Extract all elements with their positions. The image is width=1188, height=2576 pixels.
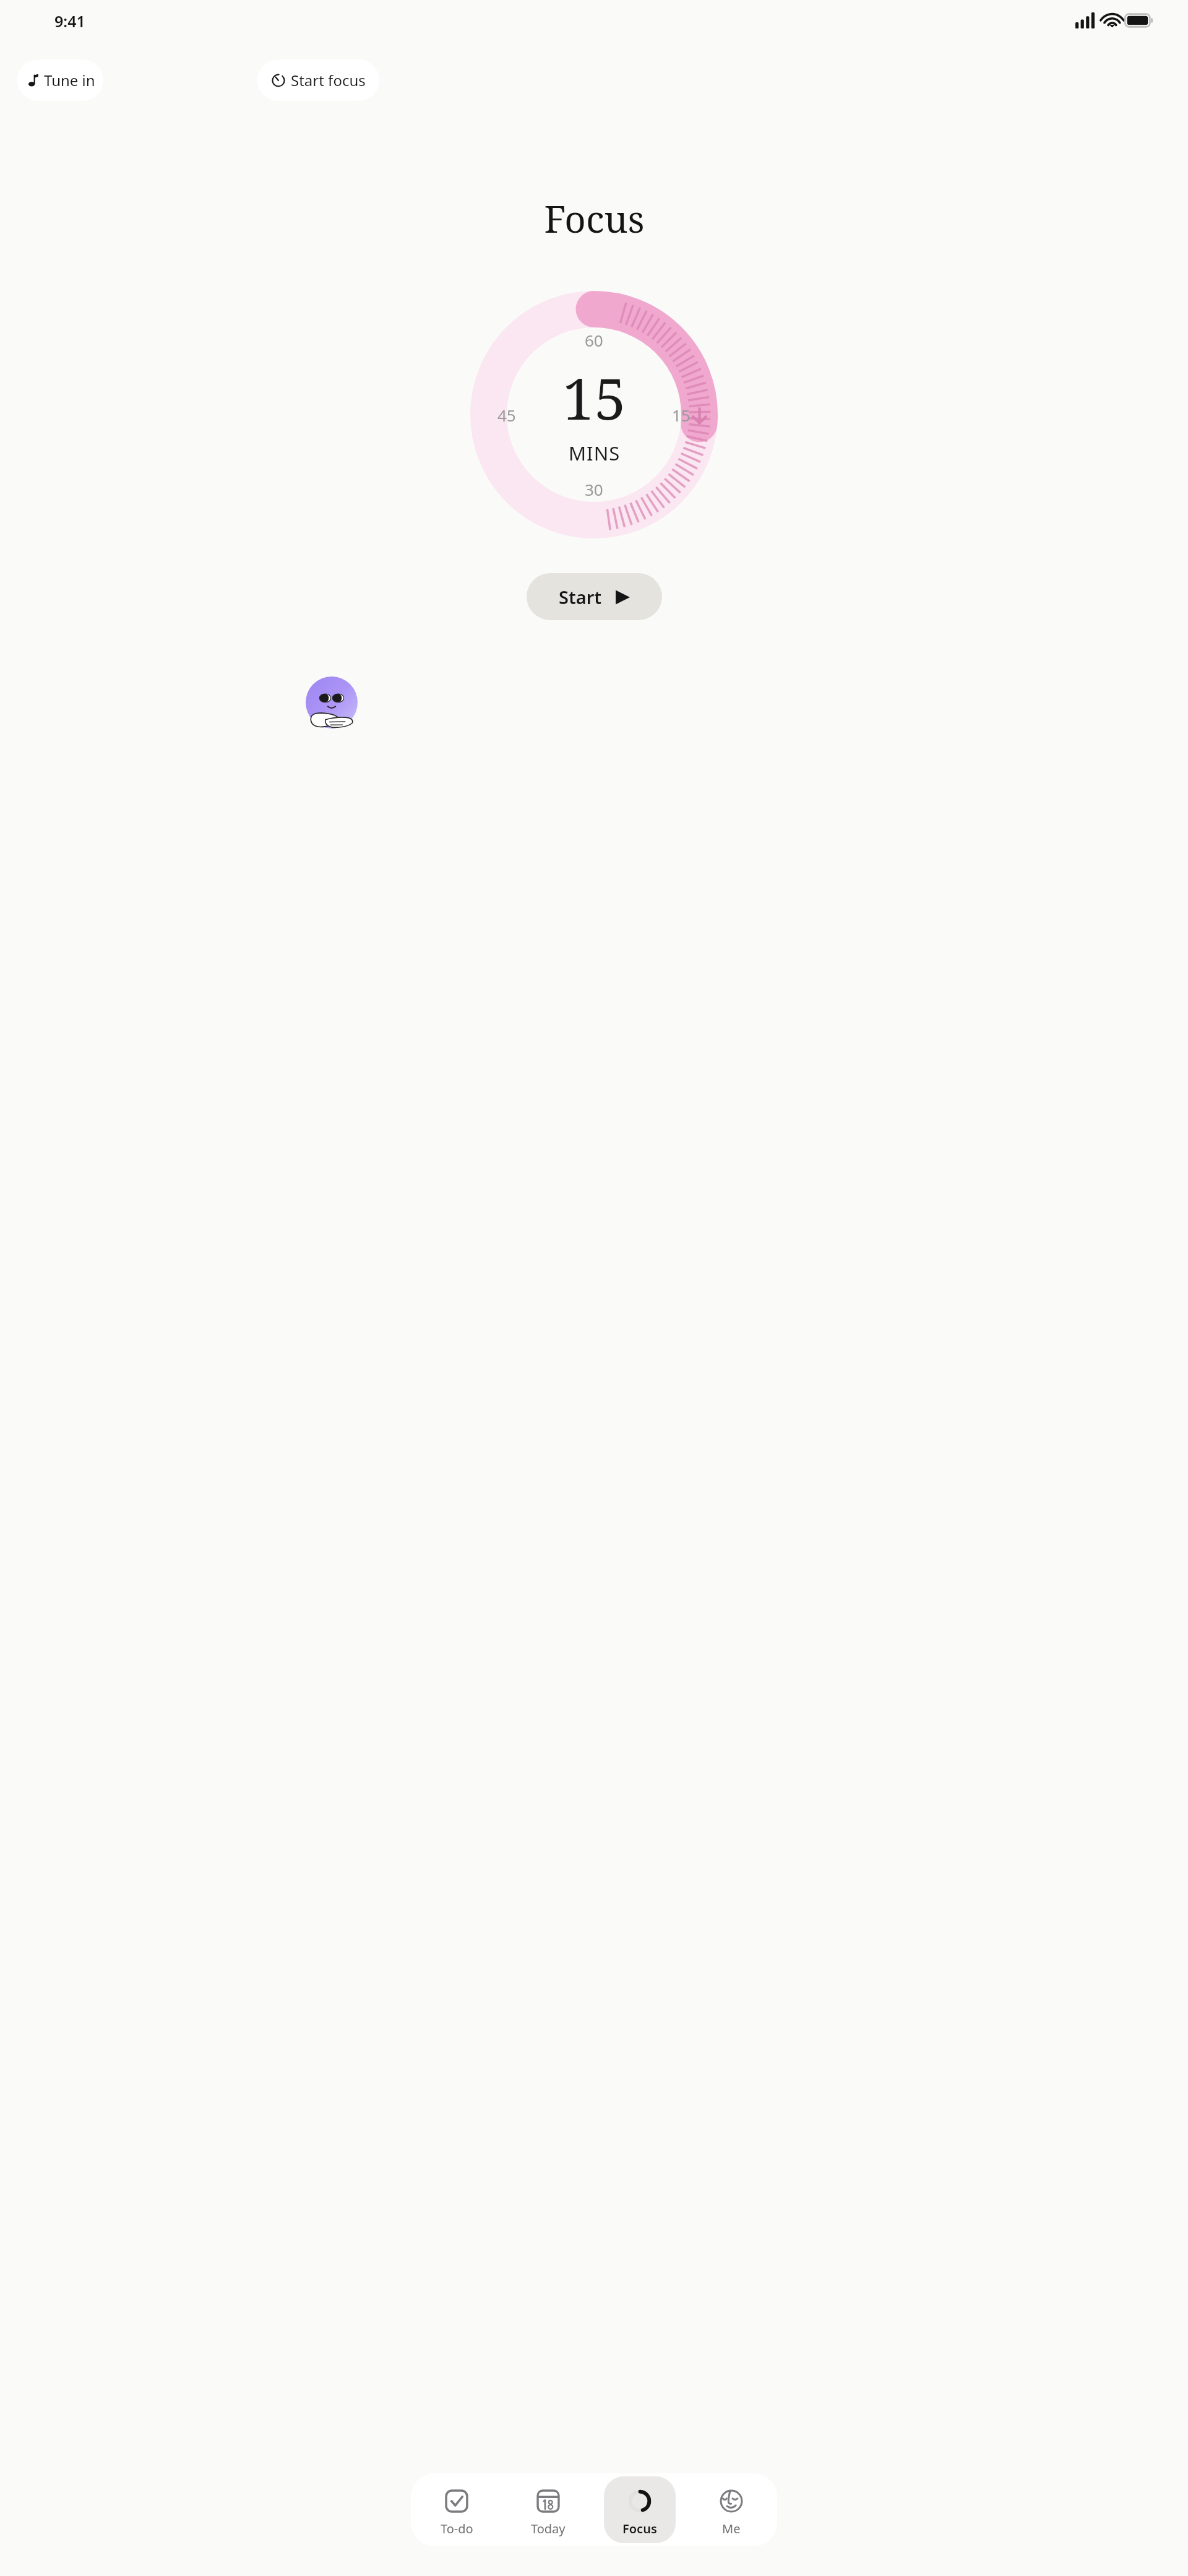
button[interactable]: Start focus: [257, 59, 379, 101]
button[interactable]: To-do: [423, 2476, 491, 2543]
staticText: MINS: [569, 440, 621, 466]
staticText: Me: [722, 2520, 741, 2537]
staticText: Today: [531, 2520, 566, 2537]
staticText: 30: [585, 478, 603, 500]
staticText: Tune in: [44, 70, 95, 90]
staticText: 45: [497, 404, 516, 426]
staticText: 9:41: [54, 11, 85, 32]
button[interactable]: Me: [697, 2476, 765, 2543]
staticText: 15: [672, 404, 691, 426]
button[interactable]: 60: [470, 291, 718, 538]
staticText: Focus: [622, 2520, 657, 2537]
staticText: 60: [585, 329, 603, 351]
staticText: Start focus: [291, 70, 366, 90]
staticText: 15: [562, 359, 626, 436]
button[interactable]: Start: [527, 573, 662, 620]
staticText: To-do: [441, 2520, 473, 2537]
staticText: Focus: [544, 193, 645, 244]
button[interactable]: Focus: [604, 2476, 676, 2543]
staticText: Start: [559, 585, 602, 609]
button[interactable]: Today: [514, 2476, 582, 2543]
button[interactable]: Assistant: [306, 676, 358, 728]
button[interactable]: Tune in: [17, 59, 103, 101]
